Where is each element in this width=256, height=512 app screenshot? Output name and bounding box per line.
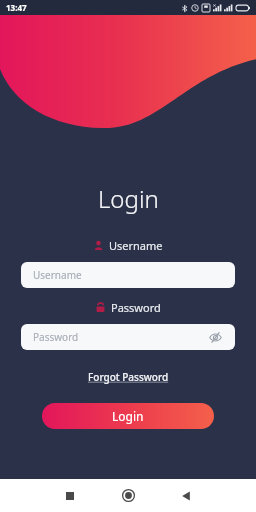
- staticText: Forgot Password: [88, 370, 169, 384]
- staticText: Login: [98, 182, 159, 215]
- staticText: Username: [33, 268, 82, 282]
- button[interactable]: Login: [42, 403, 214, 429]
- button[interactable]: Forgot Password: [84, 368, 173, 386]
- staticText: Username: [109, 238, 163, 253]
- staticText: Password: [111, 300, 161, 315]
- button[interactable]: Back: [169, 479, 203, 512]
- staticText: Login: [112, 408, 144, 424]
- button[interactable]: Home: [111, 479, 145, 512]
- button[interactable]: Recents: [53, 479, 87, 512]
- button[interactable]: Username: [21, 262, 235, 288]
- staticText: 13:47: [6, 2, 27, 13]
- button[interactable]: Show password: [207, 329, 223, 345]
- staticText: Password: [33, 330, 79, 344]
- button[interactable]: Password: [21, 324, 235, 350]
